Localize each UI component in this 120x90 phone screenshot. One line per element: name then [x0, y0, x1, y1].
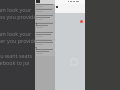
staticText: rm mmmm mm [0, 44, 38, 51]
other: Record [80, 20, 83, 23]
staticText: cebook to joi [0, 59, 30, 66]
staticText: ess you provide [0, 13, 37, 20]
staticText: can look your [0, 30, 32, 37]
staticText: ber you provide [0, 37, 37, 44]
staticText: can look your [0, 6, 32, 13]
staticText: ou want seats [0, 52, 33, 59]
staticText: rm mmmm mm [0, 20, 38, 27]
